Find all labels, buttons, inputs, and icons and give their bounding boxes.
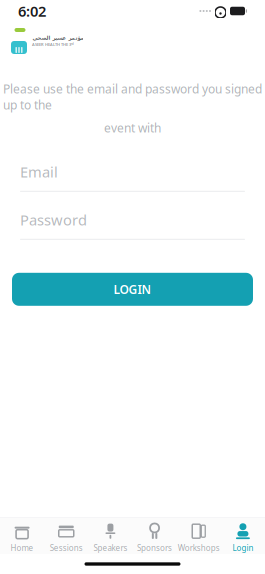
button[interactable]: Sessions <box>44 517 88 555</box>
staticText: Password <box>20 210 87 230</box>
button[interactable]: Home <box>0 517 44 555</box>
button[interactable]: Speakers <box>88 517 132 555</box>
button[interactable]: Login <box>221 517 265 555</box>
staticText: ASEER HEALTH THE 3ʳᵈ <box>32 42 74 47</box>
staticText: Email <box>20 162 58 182</box>
staticText: مؤتمر عسير الصحي <box>32 35 83 41</box>
staticText: Workshops <box>178 543 220 553</box>
button[interactable]: Sponsors <box>132 517 177 555</box>
staticText: 6:02 <box>18 1 46 21</box>
staticText: Speakers <box>93 543 127 553</box>
staticText: Home <box>11 543 34 553</box>
staticText: LOGIN <box>113 281 151 297</box>
staticText: Login <box>232 543 253 553</box>
staticText: Sponsors <box>137 543 172 553</box>
button[interactable]: LOGIN <box>12 273 253 306</box>
staticText: Sessions <box>50 543 83 553</box>
staticText: Please use the email and password you si… <box>3 81 262 113</box>
button[interactable]: Workshops <box>177 517 221 555</box>
staticText: event with <box>104 120 161 136</box>
